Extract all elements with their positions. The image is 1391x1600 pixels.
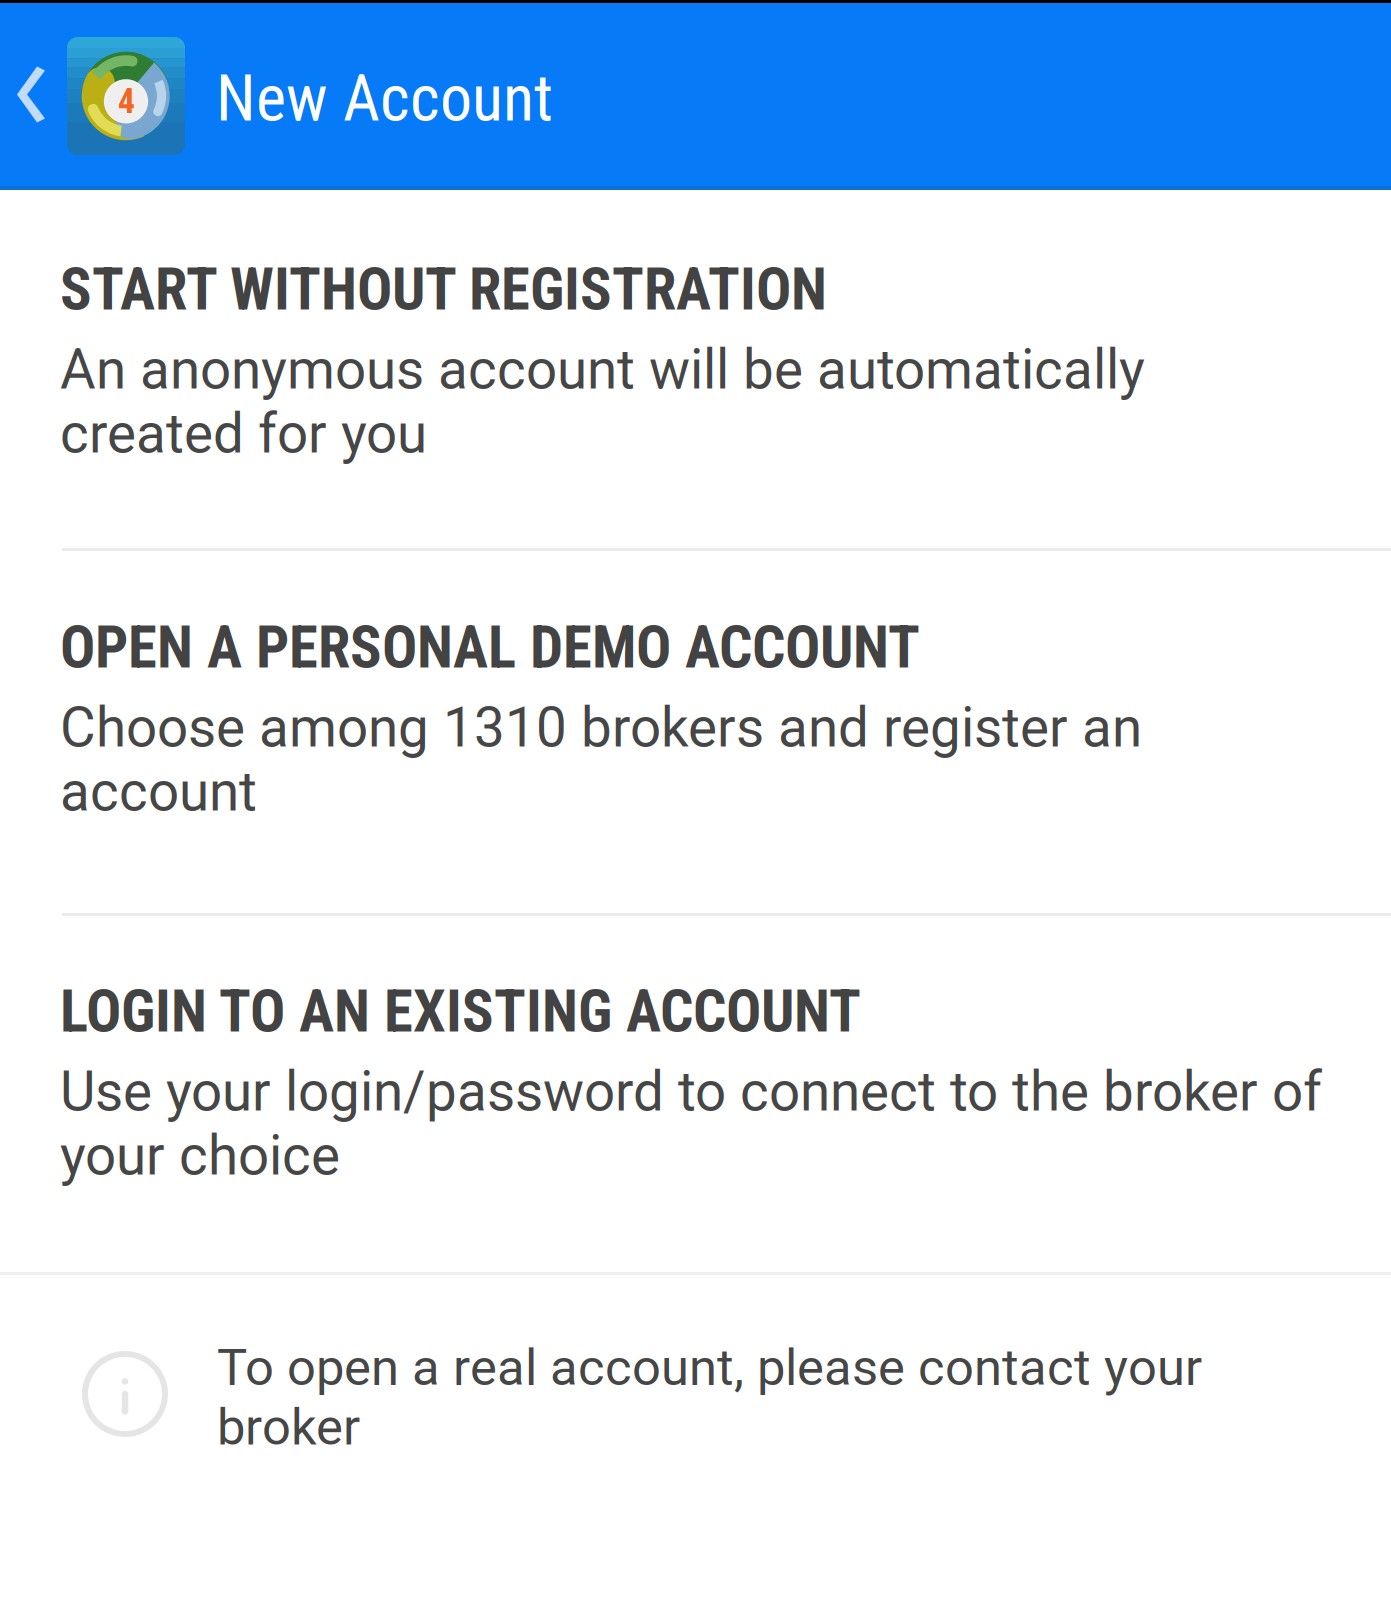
button[interactable]: Back [0,3,67,186]
staticText: To open a real account, please contact y… [217,1338,1202,1457]
button[interactable]: LOGIN TO AN EXISTING ACCOUNT [0,916,1391,1272]
button[interactable]: START WITHOUT REGISTRATION [0,190,1391,548]
staticText: An anonymous account will be automatical… [60,338,1145,466]
staticText: Use your login/password to connect to th… [60,1060,1322,1188]
staticText: OPEN A PERSONAL DEMO ACCOUNT [60,613,920,682]
staticText: LOGIN TO AN EXISTING ACCOUNT [60,977,861,1046]
button[interactable]: OPEN A PERSONAL DEMO ACCOUNT [0,551,1391,913]
staticText: Choose among 1310 brokers and register a… [60,696,1142,824]
staticText: START WITHOUT REGISTRATION [60,255,827,324]
staticText: 4 [117,81,134,122]
staticText: New Account [216,61,553,136]
